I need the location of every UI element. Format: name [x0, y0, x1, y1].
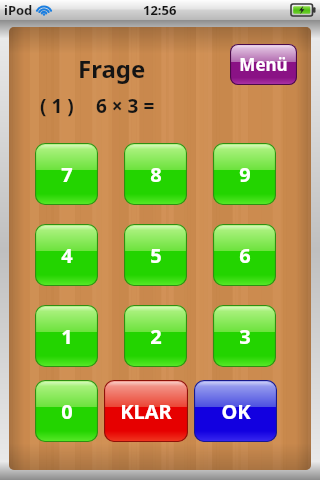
button[interactable]: KLAR: [104, 380, 188, 442]
button[interactable]: 0: [35, 380, 98, 442]
button[interactable]: 1: [35, 305, 98, 367]
staticText: iPod: [4, 1, 33, 19]
staticText: ( 1 ): [40, 93, 74, 119]
staticText: 6: [239, 242, 251, 269]
staticText: 12:56: [143, 1, 177, 19]
other: Menü: [230, 44, 297, 85]
button[interactable]: Menü: [230, 44, 297, 85]
staticText: Menü: [239, 53, 288, 76]
staticText: OK: [221, 398, 251, 425]
button[interactable]: 9: [213, 143, 276, 205]
staticText: 0: [61, 398, 73, 425]
staticText: 7: [61, 161, 73, 188]
staticText: 6 × 3 =: [96, 93, 155, 119]
button[interactable]: 4: [35, 224, 98, 286]
staticText: 1: [61, 323, 73, 350]
button[interactable]: 7: [35, 143, 98, 205]
button[interactable]: 8: [124, 143, 187, 205]
button[interactable]: OK: [194, 380, 277, 442]
staticText: KLAR: [120, 398, 172, 425]
staticText: 4: [61, 242, 73, 269]
button[interactable]: 6: [213, 224, 276, 286]
staticText: 5: [150, 242, 162, 269]
button[interactable]: 3: [213, 305, 276, 367]
staticText: Frage: [78, 52, 146, 85]
staticText: 8: [150, 161, 162, 188]
staticText: 3: [239, 323, 251, 350]
staticText: 2: [150, 323, 162, 350]
staticText: 9: [239, 161, 251, 188]
button[interactable]: 5: [124, 224, 187, 286]
button[interactable]: 2: [124, 305, 187, 367]
